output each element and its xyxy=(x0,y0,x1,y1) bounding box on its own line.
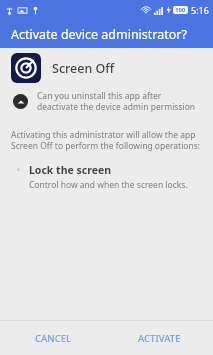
staticText: Screen Off xyxy=(52,60,115,77)
button[interactable]: Collapse details xyxy=(0,87,213,115)
staticText: Activate device administrator? xyxy=(11,26,187,43)
staticText: 100 xyxy=(175,6,186,14)
staticText: ACTIVATE xyxy=(138,332,181,345)
staticText: Can you uninstall this app after deactiv… xyxy=(37,90,201,112)
staticText: Control how and when the screen locks. xyxy=(29,179,188,191)
staticText: 5:16 xyxy=(191,4,209,16)
staticText: CANCEL xyxy=(35,332,72,345)
staticText: Activating this administrator will allow… xyxy=(11,129,202,151)
button[interactable]: CANCEL xyxy=(23,326,84,351)
staticText: Lock the screen xyxy=(29,163,112,177)
other: Collapse details xyxy=(13,94,28,109)
button[interactable]: ACTIVATE xyxy=(126,326,193,351)
